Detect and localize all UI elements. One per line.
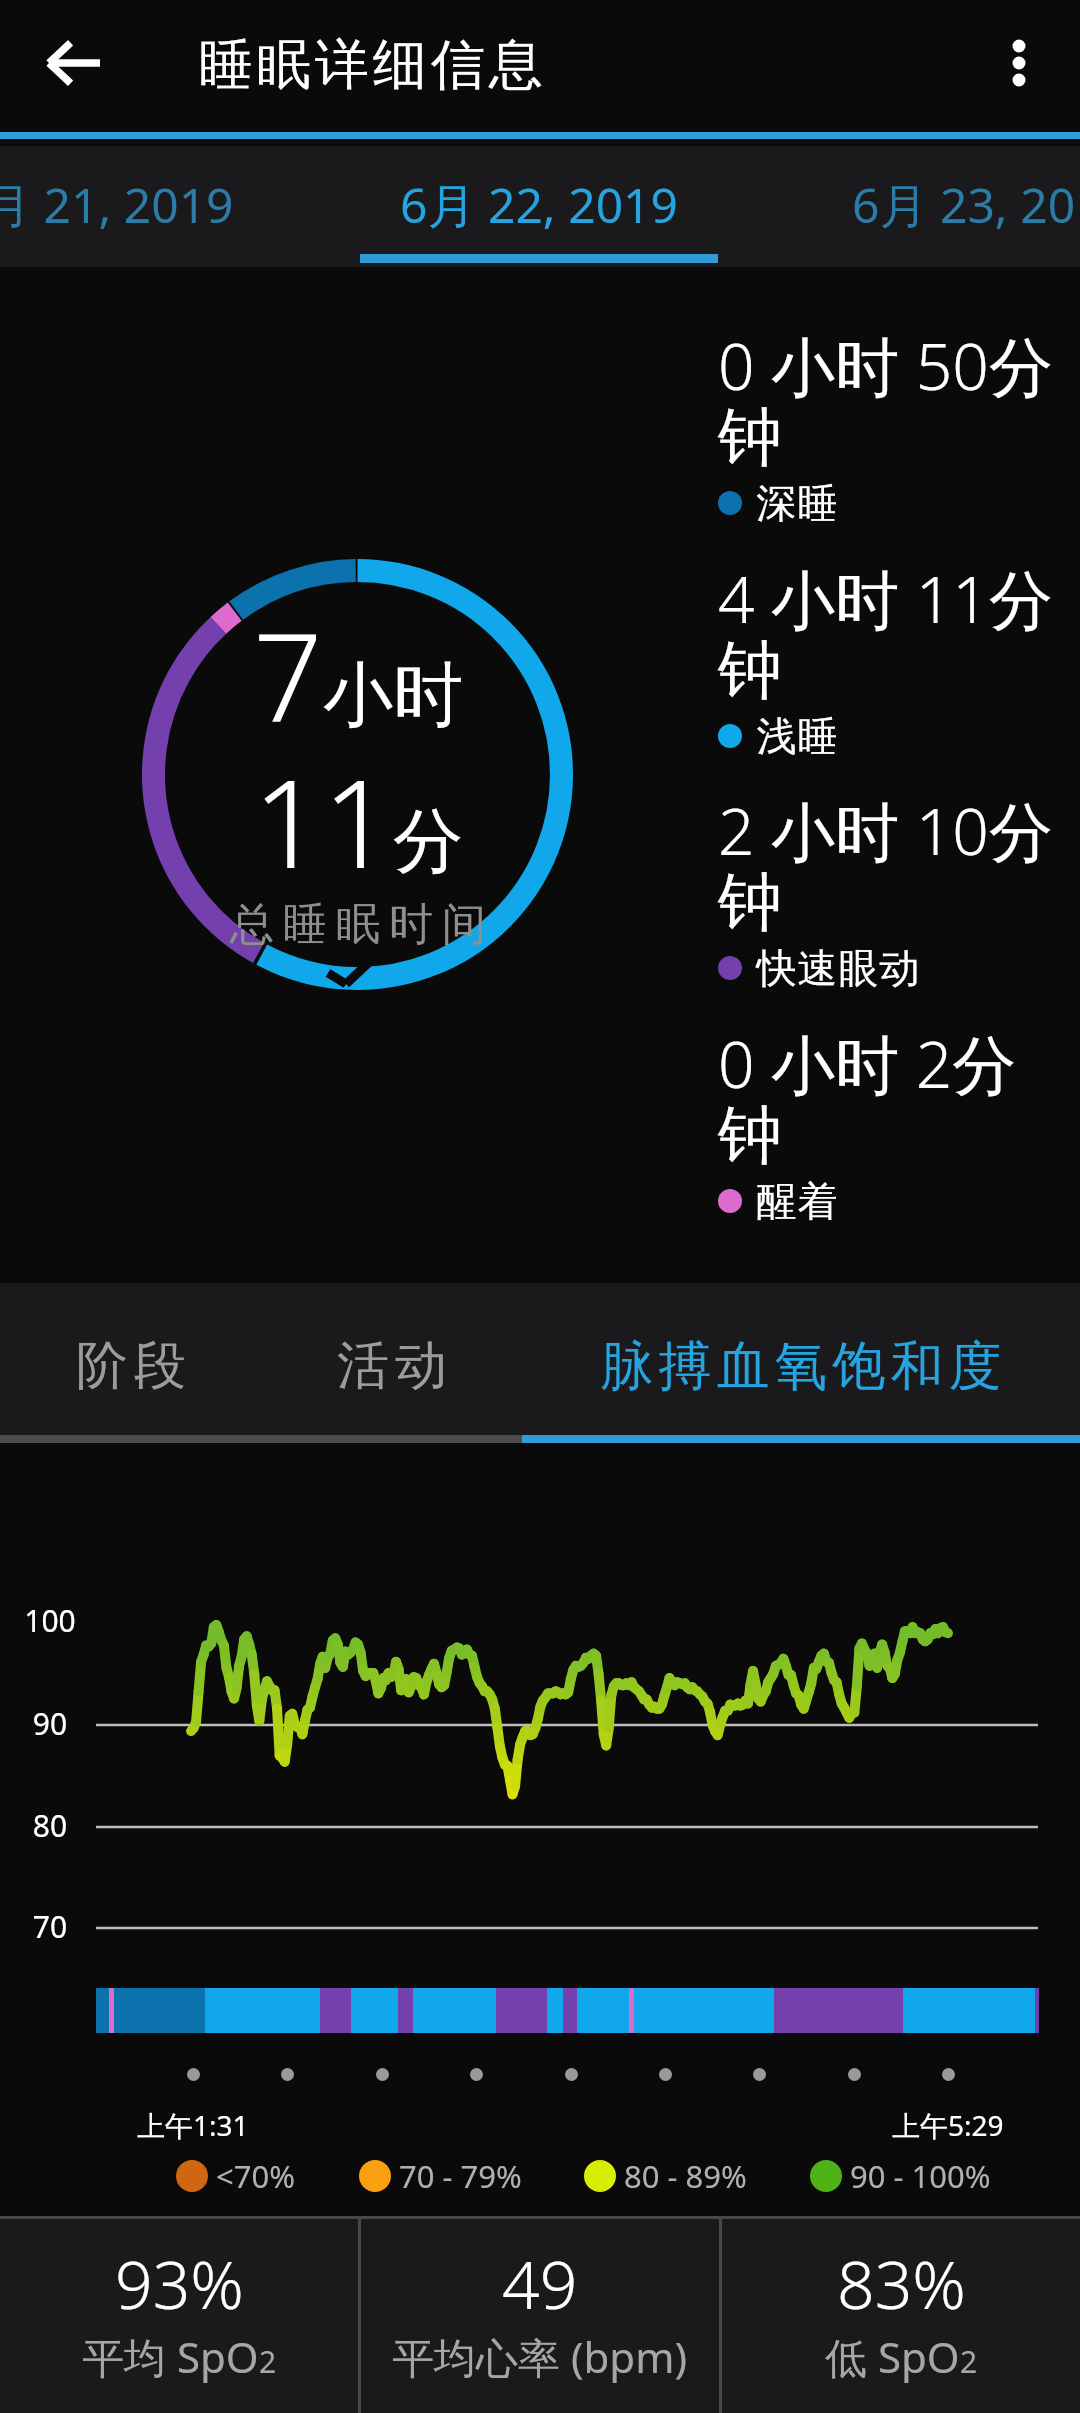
staticText: 0 小时 50分 [718, 322, 1053, 409]
staticText: 快速眼动 [756, 943, 920, 993]
staticText: 100 [6, 1600, 94, 1641]
staticText: 平均 SpO [82, 2328, 259, 2385]
button[interactable]: 6月 23, 201 [718, 146, 1080, 267]
staticText: 70 [6, 1906, 94, 1947]
staticText: 钟 [718, 862, 782, 943]
button[interactable]: 6月 22, 2019 [360, 146, 718, 267]
staticText: 0 小时 2分 [718, 1020, 1017, 1107]
staticText: <70% [216, 2155, 295, 2197]
button[interactable]: 月 21, 2019 [0, 146, 360, 267]
staticText: 80 [6, 1805, 94, 1846]
staticText: 深睡 [756, 478, 838, 528]
button[interactable]: 阶段 [0, 1283, 262, 1443]
staticText: 上午5:29 [892, 2106, 1004, 2144]
staticText: 平均心率 (bpm) [392, 2328, 688, 2385]
staticText: 7 [253, 592, 323, 758]
staticText: 分 [393, 798, 463, 886]
button[interactable]: 80 - 89% [584, 2155, 747, 2197]
staticText: 小时 [323, 652, 463, 740]
staticText: 醒着 [756, 1176, 838, 1226]
staticText: 浅睡 [756, 711, 838, 761]
staticText: 11 [253, 738, 393, 904]
staticText: 2 [259, 2341, 277, 2382]
staticText: 90 - 100% [850, 2155, 991, 2197]
staticText: 月 21, 2019 [0, 172, 234, 238]
button[interactable]: 93% [0, 2219, 358, 2413]
staticText: 上午1:31 [137, 2106, 249, 2144]
staticText: 活动 [334, 1333, 450, 1399]
button[interactable]: 83% [722, 2219, 1080, 2413]
staticText: 低 SpO [825, 2328, 960, 2385]
button[interactable]: 活动 [262, 1283, 522, 1443]
staticText: 70 - 79% [399, 2155, 522, 2197]
staticText: 钟 [718, 630, 782, 711]
staticText: 93% [115, 2238, 244, 2328]
button[interactable]: 49 [361, 2219, 719, 2413]
staticText: 总睡眠时间 [147, 897, 578, 952]
staticText: 2 [960, 2341, 978, 2382]
staticText: 6月 23, 201 [852, 172, 1080, 238]
staticText: 80 - 89% [624, 2155, 747, 2197]
button[interactable]: More options [979, 23, 1059, 103]
staticText: 钟 [718, 1095, 782, 1176]
staticText: 49 [502, 2238, 578, 2328]
staticText: 6月 22, 2019 [400, 172, 679, 238]
staticText: 钟 [718, 397, 782, 478]
button[interactable]: <70% [176, 2155, 295, 2197]
button[interactable]: 90 - 100% [810, 2155, 991, 2197]
staticText: 睡眠详细信息 [197, 31, 545, 99]
staticText: 脉搏血氧饱和度 [598, 1333, 1004, 1400]
staticText: 90 [6, 1703, 94, 1744]
button[interactable]: 70 - 79% [359, 2155, 522, 2197]
button[interactable]: 脉搏血氧饱和度 [522, 1283, 1080, 1443]
staticText: 83% [837, 2238, 966, 2328]
staticText: 2 小时 10分 [718, 787, 1053, 874]
button[interactable]: Back [28, 17, 118, 107]
staticText: 阶段 [73, 1333, 189, 1399]
staticText: 4 小时 11分 [718, 555, 1053, 642]
